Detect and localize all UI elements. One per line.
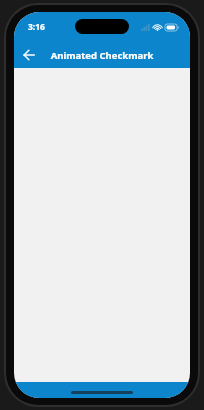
button[interactable]: Back — [17, 43, 41, 67]
staticText: Animated Checkmark — [14, 49, 190, 62]
staticText: 3:16 — [28, 21, 45, 33]
